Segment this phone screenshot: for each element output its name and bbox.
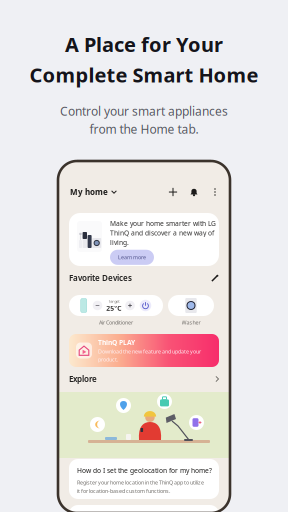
staticText: Explore xyxy=(69,374,97,384)
staticText: Target xyxy=(108,298,119,304)
staticText: product. xyxy=(98,356,118,363)
staticText: ThinQ and discover a new way of xyxy=(110,228,214,237)
button[interactable]: My home xyxy=(70,183,117,201)
staticText: it for location-based custom functions. xyxy=(77,487,170,494)
staticText: Make your home smarter with LG xyxy=(110,219,216,228)
staticText: Washer xyxy=(181,319,200,326)
staticText: Air Conditioner xyxy=(99,319,133,326)
button[interactable] xyxy=(168,295,214,316)
staticText: Register your home location in the ThinQ… xyxy=(77,479,204,486)
staticText: Favorite Devices xyxy=(69,273,132,283)
button[interactable]: More xyxy=(206,183,224,201)
staticText: A Place for Your xyxy=(65,31,223,58)
button[interactable]: Learn more xyxy=(110,250,154,265)
staticText: Learn more xyxy=(118,254,146,261)
button[interactable]: Target xyxy=(69,295,163,316)
button[interactable]: Explore xyxy=(69,373,219,385)
button[interactable]: Make your home smarter with LG xyxy=(69,213,219,266)
button[interactable]: How do I disconnect my appliance? xyxy=(69,505,219,512)
staticText: 25°C xyxy=(106,304,121,313)
staticText: ThinQ PLAY xyxy=(98,338,135,347)
button[interactable]: Add xyxy=(164,183,182,201)
staticText: My home xyxy=(70,187,108,197)
staticText: How do I set the geolocation for my home… xyxy=(77,466,212,475)
staticText: Complete Smart Home xyxy=(29,62,258,88)
button[interactable]: Notifications xyxy=(185,183,203,201)
staticText: living. xyxy=(110,238,129,247)
button[interactable]: Edit favorites xyxy=(211,274,219,282)
staticText: from the Home tab. xyxy=(89,121,198,137)
button[interactable]: ThinQ PLAY xyxy=(69,334,219,367)
staticText: Control your smart appliances xyxy=(60,103,228,119)
button[interactable]: How do I set the geolocation for my home… xyxy=(69,459,219,499)
staticText: Download the new feature and update your xyxy=(98,348,201,355)
